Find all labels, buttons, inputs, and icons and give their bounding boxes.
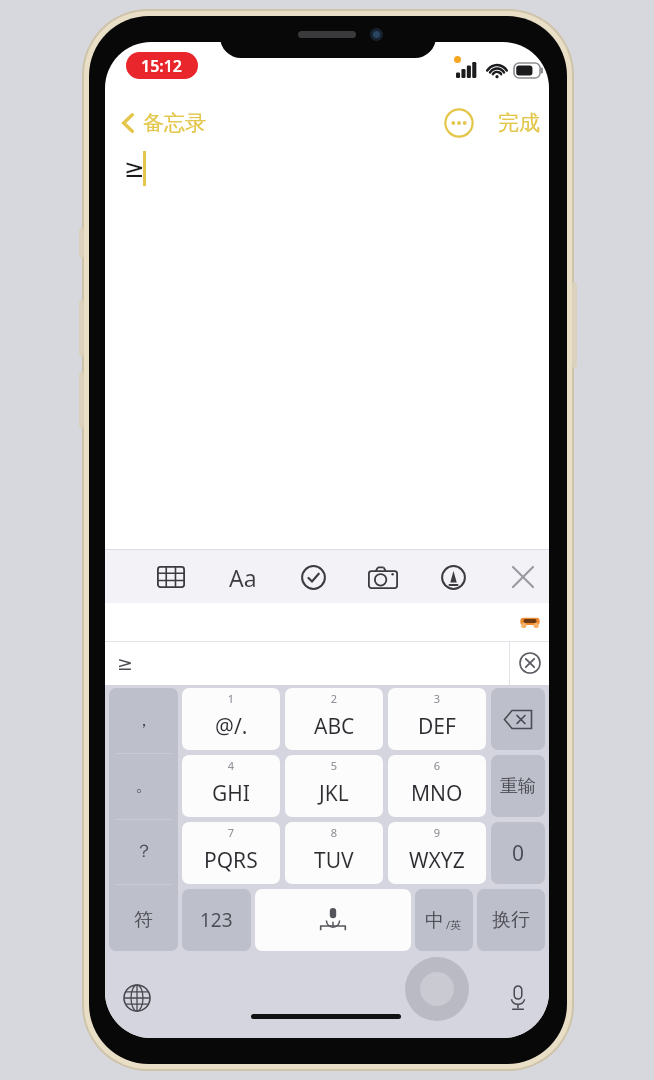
- staticText: 15:12: [141, 55, 183, 77]
- staticText: DEF: [418, 712, 456, 741]
- button[interactable]: 重输: [491, 755, 545, 817]
- staticText: GHI: [212, 779, 250, 808]
- staticText: 换行: [492, 908, 530, 932]
- button[interactable]: Text format: [221, 555, 265, 599]
- button[interactable]: 0: [491, 822, 545, 884]
- staticText: 6: [388, 758, 486, 772]
- staticText: ≥: [117, 652, 133, 674]
- staticText: PQRS: [204, 846, 258, 875]
- staticText: ？: [135, 840, 153, 863]
- staticText: WXYZ: [409, 846, 465, 875]
- button[interactable]: Handwriting pad: [405, 957, 469, 1021]
- staticText: TUV: [314, 846, 354, 875]
- staticText: 7: [182, 825, 280, 839]
- button[interactable]: Dictate: [500, 980, 536, 1016]
- button[interactable]: 2: [285, 688, 383, 750]
- staticText: 9: [388, 825, 486, 839]
- staticText: 5: [285, 758, 383, 772]
- button[interactable]: 9: [388, 822, 486, 884]
- button[interactable]: 123: [182, 889, 251, 951]
- button[interactable]: Camera: [361, 555, 405, 599]
- staticText: 重输: [500, 775, 536, 798]
- button[interactable]: Close keyboard: [501, 555, 545, 599]
- button[interactable]: ，: [109, 688, 178, 949]
- button[interactable]: 备忘录: [111, 100, 231, 146]
- button[interactable]: 6: [388, 755, 486, 817]
- staticText: 中: [425, 909, 444, 933]
- button[interactable]: 中: [415, 889, 473, 951]
- staticText: /英: [446, 917, 462, 932]
- button[interactable]: 4: [182, 755, 280, 817]
- button[interactable]: Delete: [491, 688, 545, 750]
- button[interactable]: 符: [109, 889, 178, 951]
- button[interactable]: 7: [182, 822, 280, 884]
- staticText: 3: [388, 691, 486, 705]
- staticText: 完成: [498, 110, 540, 136]
- button[interactable]: 1: [182, 688, 280, 750]
- staticText: 2: [285, 691, 383, 705]
- staticText: 备忘录: [143, 110, 206, 136]
- staticText: 4: [182, 758, 280, 772]
- button[interactable]: Switch keyboard: [119, 980, 155, 1016]
- button[interactable]: 5: [285, 755, 383, 817]
- staticText: ！: [135, 905, 153, 928]
- button[interactable]: 3: [388, 688, 486, 750]
- button[interactable]: 8: [285, 822, 383, 884]
- button[interactable]: Markup: [431, 555, 475, 599]
- staticText: @/.: [215, 712, 248, 741]
- staticText: 123: [200, 907, 233, 933]
- button[interactable]: Table: [149, 555, 193, 599]
- button[interactable]: Space: [255, 889, 411, 951]
- staticText: ABC: [314, 712, 355, 741]
- button[interactable]: More: [441, 105, 477, 141]
- button[interactable]: 换行: [477, 889, 545, 951]
- staticText: 。: [135, 774, 153, 797]
- staticText: 1: [182, 691, 280, 705]
- staticText: MNO: [411, 779, 463, 808]
- staticText: 符: [134, 908, 153, 932]
- staticText: Aa: [229, 562, 257, 593]
- staticText: ，: [135, 709, 153, 732]
- staticText: ≥: [124, 154, 145, 183]
- button[interactable]: 完成: [489, 100, 549, 146]
- staticText: 8: [285, 825, 383, 839]
- button[interactable]: Clear input: [514, 647, 546, 679]
- button[interactable]: Checklist: [291, 555, 335, 599]
- staticText: 0: [512, 839, 525, 868]
- staticText: JKL: [319, 779, 349, 808]
